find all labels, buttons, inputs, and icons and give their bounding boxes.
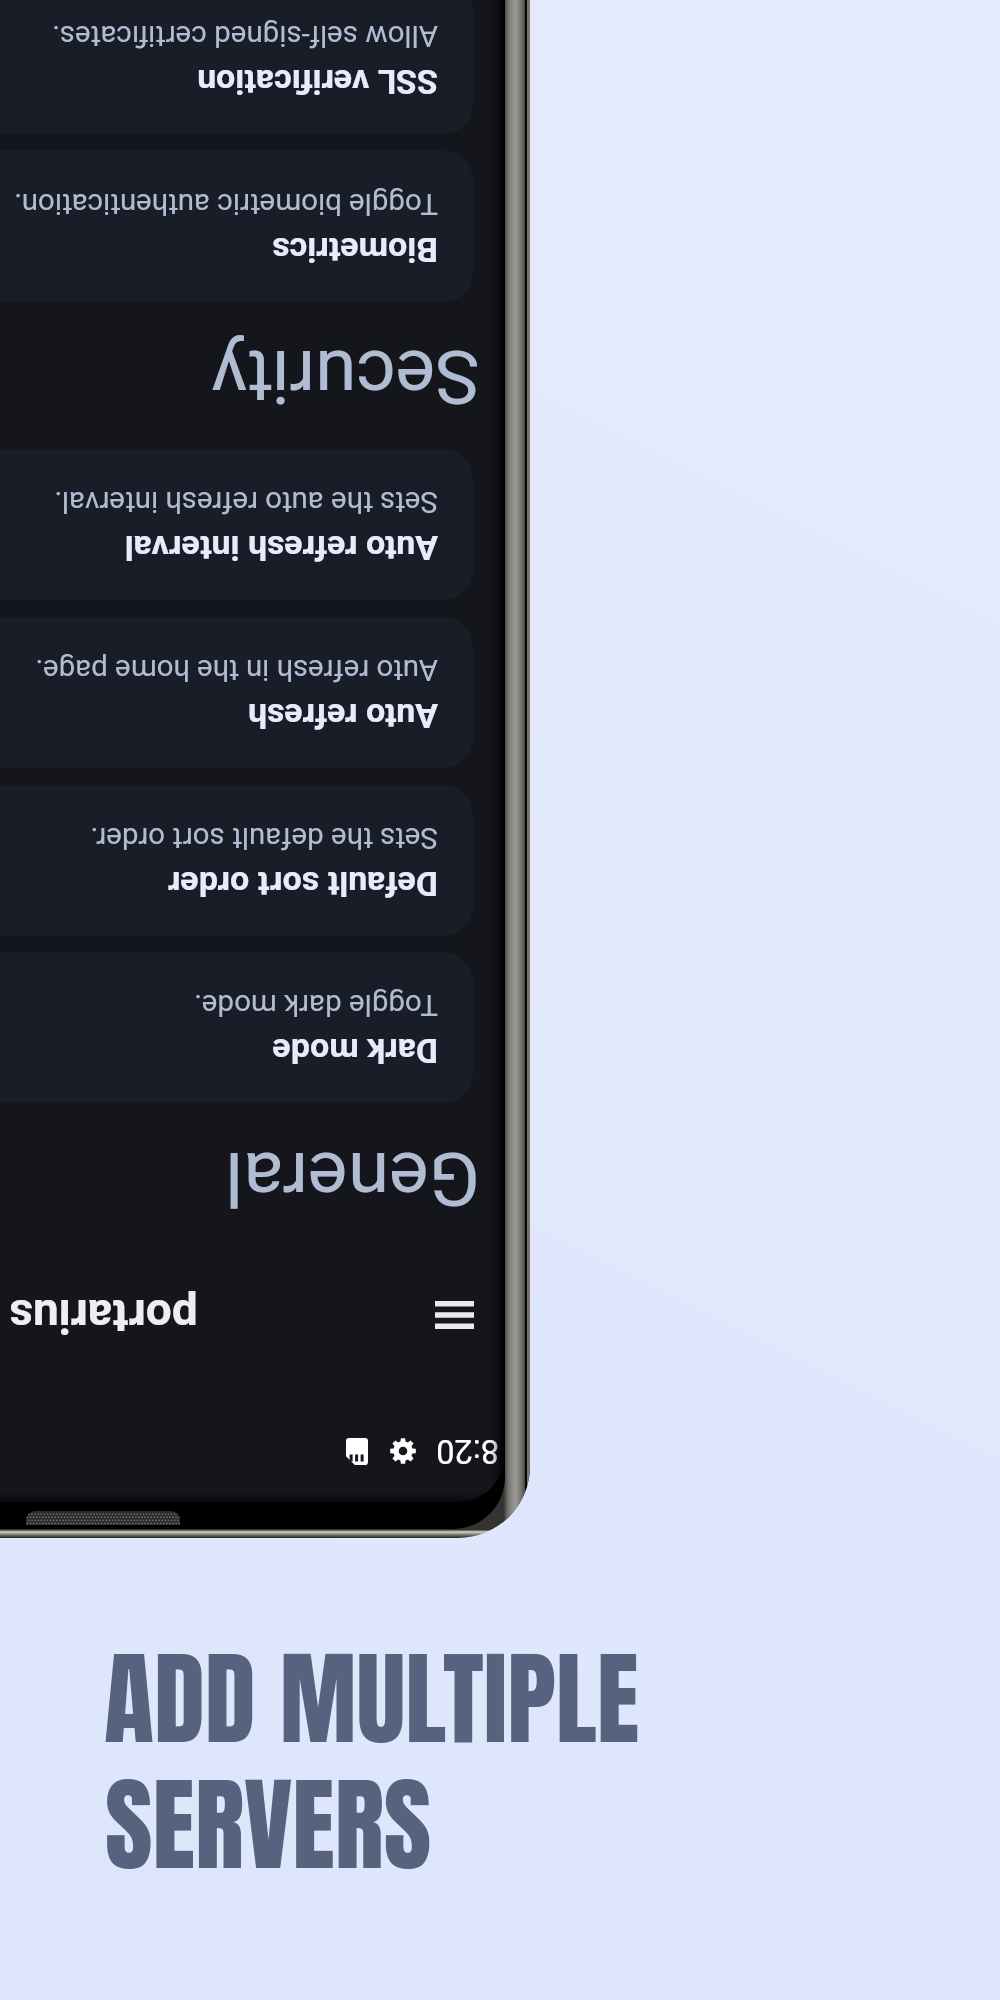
staticText: Auto refresh in the home page.	[35, 652, 438, 687]
staticText: Toggle dark mode.	[194, 987, 438, 1022]
button[interactable]: Auto refresh	[0, 617, 473, 768]
staticText: Allow self-signed certificates.	[52, 18, 438, 53]
staticText: Biometrics	[272, 230, 438, 270]
button[interactable]: Auto refresh interval	[0, 449, 473, 600]
button[interactable]: SSL verification	[0, 0, 473, 134]
button[interactable]: Default sort order	[0, 785, 473, 936]
staticText: SSL verification	[197, 62, 438, 102]
staticText: portarius	[9, 1289, 198, 1343]
staticText: General	[224, 1135, 480, 1223]
staticText: SERVERS	[105, 1747, 432, 1902]
button[interactable]: Biometrics	[0, 151, 473, 302]
staticText: Default sort order	[168, 864, 438, 904]
staticText: Sets the auto refresh interval.	[54, 484, 438, 519]
staticText: Dark mode	[272, 1031, 438, 1071]
staticText: ADD MULTIPLE	[104, 1621, 640, 1776]
button[interactable]: Open navigation menu	[413, 1273, 497, 1357]
staticText: Auto refresh	[247, 696, 438, 736]
staticText: Sets the default sort order.	[90, 820, 438, 855]
staticText: Toggle biometric authentication.	[13, 186, 438, 221]
staticText: 8:20	[436, 1432, 499, 1470]
staticText: Security	[211, 333, 480, 421]
button[interactable]: Dark mode	[0, 952, 473, 1103]
staticText: Auto refresh interval	[124, 528, 438, 568]
